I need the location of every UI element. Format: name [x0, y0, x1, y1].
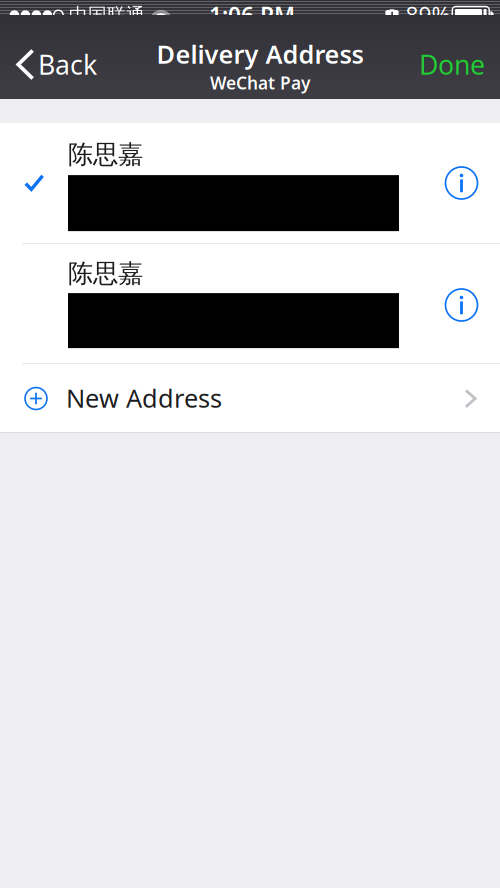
staticText: 中国联通	[69, 3, 145, 26]
button[interactable]: Back	[0, 30, 135, 99]
button[interactable]: 陈思嘉	[0, 123, 500, 243]
staticText: 陈思嘉	[68, 258, 143, 289]
staticText: 89%	[405, 0, 450, 30]
staticText: Delivery Address	[156, 37, 363, 71]
staticText: New Address	[66, 381, 222, 415]
staticText: Back	[38, 47, 97, 82]
button[interactable]: 陈思嘉	[0, 244, 500, 363]
staticText: WeChat Pay	[210, 71, 310, 94]
staticText: Done	[419, 47, 485, 82]
staticText: 1:06 PM	[209, 0, 295, 30]
button[interactable]: Done	[390, 30, 500, 99]
button[interactable]: New Address	[0, 364, 500, 432]
staticText: 陈思嘉	[68, 139, 143, 170]
